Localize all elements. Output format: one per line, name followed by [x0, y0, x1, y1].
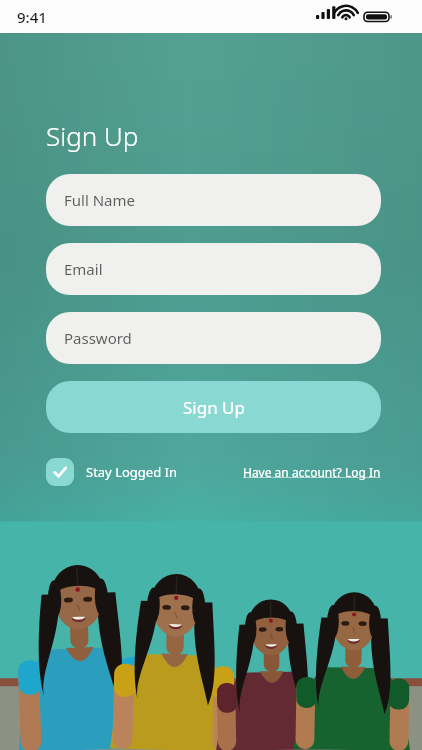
- staticText: Sign Up: [183, 396, 245, 419]
- staticText: Stay Logged In: [86, 463, 177, 481]
- staticText: Have an account? Log In: [243, 464, 381, 480]
- button[interactable]: Have an account? Log In: [243, 464, 381, 480]
- button[interactable]: Stay Logged In: [46, 458, 177, 486]
- button[interactable]: Email: [46, 243, 381, 295]
- staticText: 9:41: [17, 7, 47, 27]
- button[interactable]: Password: [46, 312, 381, 364]
- staticText: Sign Up: [46, 118, 139, 153]
- button[interactable]: Sign Up: [46, 381, 381, 433]
- staticText: Email: [64, 259, 103, 279]
- staticText: Full Name: [64, 190, 135, 210]
- staticText: Password: [64, 328, 132, 348]
- button[interactable]: Full Name: [46, 174, 381, 226]
